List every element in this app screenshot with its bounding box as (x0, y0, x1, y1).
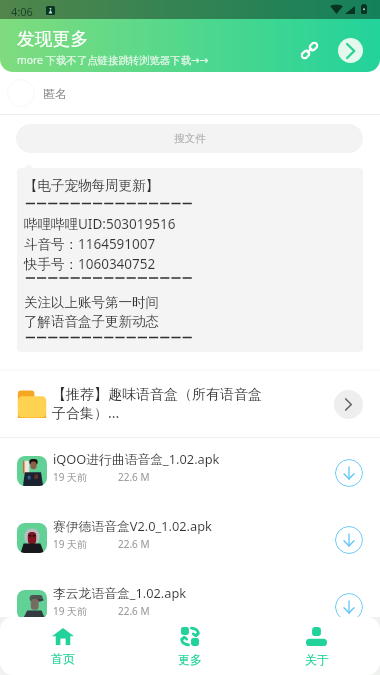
button[interactable]: 搜文件 (16, 124, 363, 153)
staticText: 搜文件 (174, 132, 206, 145)
button[interactable]: Download (335, 459, 363, 487)
staticText: 首页 (51, 651, 75, 666)
button[interactable]: 关于 (253, 617, 380, 675)
staticText: 【推荐】趣味语音盒（所有语音盒子合集）... (52, 386, 262, 422)
button[interactable]: 更多 (126, 617, 253, 675)
button[interactable]: iQOO进行曲语音盒_1.02.apk (0, 439, 380, 506)
staticText: 【电子宠物每周更新】 哔哩哔哩UID:503019516 斗音号：1164591… (24, 177, 176, 330)
staticText: 19 天前 (53, 470, 88, 484)
button[interactable]: 匿名 (0, 72, 380, 114)
staticText: 发现更多 (17, 28, 89, 50)
button[interactable]: Download (335, 526, 363, 554)
button[interactable]: Download (335, 593, 363, 621)
button[interactable]: 李云龙语音盒_1.02.apk (0, 573, 380, 640)
button[interactable]: Copy link (298, 39, 321, 62)
staticText: 赛伊德语音盒V2.0_1.02.apk (53, 517, 212, 534)
staticText: 关于 (305, 652, 329, 667)
staticText: 19 天前 (53, 537, 88, 551)
staticText: iQOO进行曲语音盒_1.02.apk (53, 450, 220, 467)
button[interactable]: Go (338, 38, 363, 63)
staticText: 19 天前 (53, 604, 88, 618)
staticText: 李云龙语音盒_1.02.apk (53, 584, 187, 601)
staticText: 更多 (178, 652, 202, 667)
button[interactable]: Open folder (334, 390, 363, 419)
staticText: 22.6 M (118, 604, 150, 618)
staticText: 4:06 (11, 4, 33, 19)
staticText: 匿名 (43, 86, 67, 101)
button[interactable]: 【推荐】趣味语音盒（所有语音盒子合集）... (0, 371, 380, 437)
staticText: more 下载不了点链接跳转浏览器下载→→ (17, 53, 209, 67)
staticText: 22.6 M (118, 470, 150, 484)
button[interactable]: 赛伊德语音盒V2.0_1.02.apk (0, 506, 380, 573)
staticText: 22.6 M (118, 537, 150, 551)
button[interactable]: 首页 (0, 617, 126, 675)
